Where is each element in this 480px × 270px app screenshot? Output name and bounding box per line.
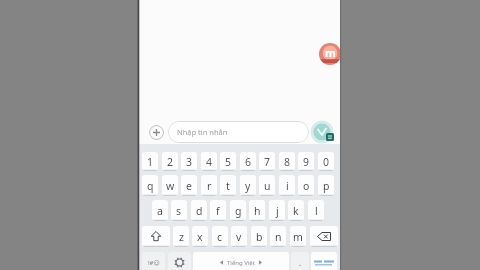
staticText: j [276,204,279,218]
staticText: 6 [245,155,252,169]
button[interactable]: !#☺ [142,252,165,270]
button[interactable]: n [270,226,286,247]
button[interactable]: c [212,226,228,247]
button[interactable]: v [231,226,247,247]
staticText: w [166,179,175,193]
button[interactable]: b [251,226,267,247]
button[interactable]: a [152,200,168,221]
staticText: 5 [225,155,232,169]
staticText: z [179,230,184,244]
staticText: 4 [206,155,213,169]
staticText: g [235,204,242,218]
button[interactable]: x [192,226,208,247]
staticText: m [293,230,303,244]
staticText: e [186,179,192,193]
staticText: c [217,230,223,244]
button[interactable]: . [291,252,309,270]
button[interactable]: y [240,175,256,196]
button[interactable]: t [220,175,236,196]
button[interactable]: r [201,175,217,196]
staticText: n [275,230,282,244]
staticText: q [147,179,154,193]
staticText: d [196,204,203,218]
button[interactable]: 6 [240,152,256,171]
staticText: Nhập tin nhắn [177,127,228,137]
button[interactable]: h [249,200,265,221]
staticText: 1 [147,155,154,169]
button[interactable]: l [308,200,324,221]
staticText: b [256,230,263,244]
button[interactable] [311,252,337,270]
button[interactable]: z [173,226,189,247]
button[interactable]: o [298,175,314,196]
staticText: . [299,257,302,268]
staticText: 3 [186,155,193,169]
button[interactable]: 3 [181,152,197,171]
staticText: 7 [264,155,271,169]
button[interactable]: f [210,200,226,221]
button[interactable]: 2 [162,152,178,171]
button[interactable] [310,226,338,247]
button[interactable]: e [181,175,197,196]
button[interactable]: Tiếng Việt [193,252,289,270]
button[interactable]: 9 [298,152,314,171]
staticText: a [157,204,163,218]
staticText: i [286,179,289,193]
staticText: k [293,204,299,218]
button[interactable]: m [290,226,306,247]
button[interactable]: j [269,200,285,221]
button[interactable]: q [142,175,158,196]
button[interactable]: 0 [318,152,334,171]
staticText: r [207,179,212,193]
staticText: !#☺ [148,259,160,267]
staticText: 9 [303,155,310,169]
button[interactable]: 4 [201,152,217,171]
staticText: 2 [167,155,174,169]
staticText: o [303,179,310,193]
button[interactable]: w [162,175,178,196]
button[interactable]: i [279,175,295,196]
button[interactable]: s [171,200,187,221]
button[interactable] [142,226,170,247]
button[interactable]: g [230,200,246,221]
staticText: f [216,204,220,218]
button[interactable]: Nhập tin nhắn [168,121,309,143]
staticText: t [226,179,230,193]
staticText: s [176,204,182,218]
staticText: 8 [284,155,291,169]
button[interactable]: d [191,200,207,221]
staticText: Tiếng Việt [227,259,255,267]
button[interactable]: 7 [259,152,275,171]
button[interactable] [168,252,191,270]
staticText: y [245,179,251,193]
button[interactable]: 5 [220,152,236,171]
button[interactable]: k [288,200,304,221]
button[interactable] [310,120,335,145]
button[interactable]: u [259,175,275,196]
button[interactable]: 1 [142,152,158,171]
staticText: x [197,230,203,244]
button[interactable] [149,125,164,140]
staticText: u [264,179,271,193]
button[interactable]: 8 [279,152,295,171]
staticText: v [236,230,242,244]
staticText: h [254,204,261,218]
staticText: 0 [323,155,330,169]
staticText: p [323,179,330,193]
staticText: l [315,204,318,218]
staticText: m [325,45,336,60]
button[interactable]: p [318,175,334,196]
